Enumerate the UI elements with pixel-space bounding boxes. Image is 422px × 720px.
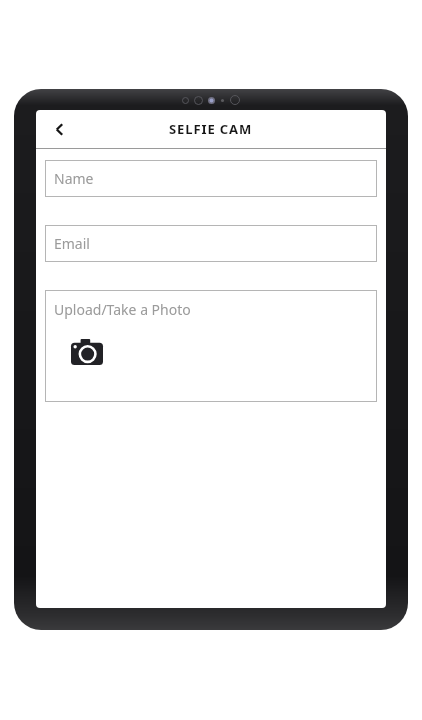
staticText: Name	[54, 169, 94, 188]
button[interactable]: Email	[45, 225, 377, 262]
button[interactable]: Take a photo	[70, 338, 104, 366]
staticText: Email	[54, 234, 90, 253]
button[interactable]: Upload/Take a Photo	[45, 290, 377, 402]
button[interactable]: Back	[41, 111, 77, 147]
staticText: SELFIE CAM	[169, 120, 253, 138]
button[interactable]: Name	[45, 160, 377, 197]
staticText: Upload/Take a Photo	[54, 300, 191, 319]
